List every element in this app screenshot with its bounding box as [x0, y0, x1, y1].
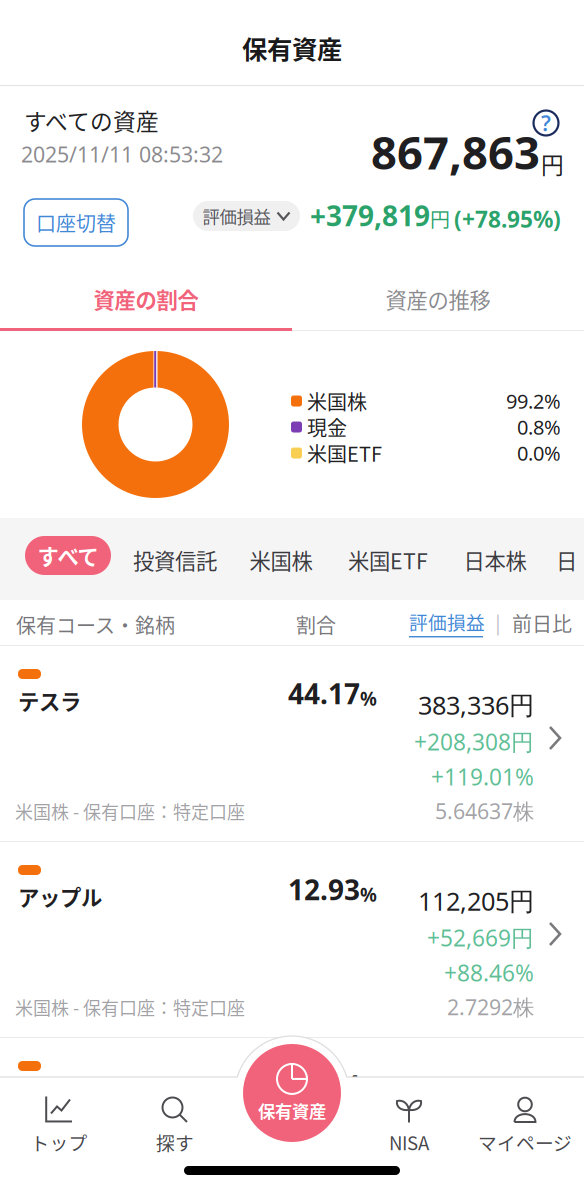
staticText: ?	[541, 109, 551, 137]
staticText: +88.46%	[444, 958, 534, 988]
staticText: 投資信託	[133, 545, 217, 575]
staticText: 5.64637株	[435, 797, 534, 825]
staticText: 米国ETF	[348, 545, 428, 575]
button[interactable]: トップ	[0, 1089, 118, 1163]
button[interactable]: 保有資産	[243, 1044, 341, 1142]
staticText: (+78.95%)	[454, 204, 561, 234]
staticText: 2.7292株	[447, 993, 534, 1021]
staticText: 米国株 - 保有口座：特定口座	[15, 994, 245, 1020]
staticText: 383,336円	[418, 688, 534, 722]
staticText: テスラ	[18, 685, 81, 716]
button[interactable]: すべて	[25, 536, 111, 575]
staticText: 口座切替	[36, 208, 116, 237]
staticText: すべての資産	[24, 104, 159, 137]
staticText: 52,901円	[432, 1080, 534, 1114]
staticText: 日	[556, 545, 577, 575]
staticText: 保有資産	[242, 30, 342, 66]
staticText: 米国ETF	[307, 438, 382, 467]
staticText: パランティア	[18, 1077, 143, 1108]
staticText: 評価損益	[409, 608, 485, 635]
button[interactable]: マイページ	[466, 1089, 584, 1163]
staticText: 米国株 - 保有口座：特定口座	[15, 798, 245, 824]
staticText: NISA	[389, 1128, 429, 1155]
staticText: +52,669円	[427, 923, 534, 953]
staticText: 米国株	[249, 545, 312, 575]
staticText: 6.34	[304, 1067, 360, 1104]
staticText: マイページ	[478, 1128, 572, 1155]
button[interactable]: 米国株	[238, 540, 324, 580]
staticText: 資産の割合	[93, 284, 198, 314]
staticText: 日本株	[463, 545, 526, 575]
staticText: 保有コース・銘柄	[16, 610, 175, 639]
button[interactable]: 投資信託	[124, 540, 226, 580]
button[interactable]: 日本株	[452, 540, 538, 580]
staticText: 前日比	[512, 608, 572, 637]
button[interactable]: 評価損益	[409, 608, 501, 638]
staticText: 資産の推移	[385, 284, 490, 314]
button[interactable]: ヘルプ	[530, 107, 562, 139]
staticText: +119.01%	[431, 762, 534, 792]
staticText: +208,308円	[414, 727, 534, 757]
staticText: 112,205円	[418, 884, 534, 918]
staticText: 円	[541, 147, 564, 180]
staticText: 12.93	[288, 871, 360, 908]
staticText: 米国株	[307, 386, 367, 415]
staticText: 現金	[307, 412, 347, 441]
staticText: 保有資産	[258, 1098, 326, 1123]
button[interactable]: パランティア	[0, 1038, 584, 1200]
button[interactable]: テスラ	[0, 646, 584, 841]
staticText: 867,863	[371, 122, 540, 182]
staticText: 0.0%	[517, 440, 561, 466]
staticText: 2025/11/11 08:53:32	[21, 140, 223, 168]
button[interactable]: 探す	[116, 1089, 234, 1163]
staticText: アップル	[18, 881, 102, 912]
staticText: トップ	[30, 1128, 87, 1155]
button[interactable]: 前日比	[512, 610, 576, 636]
staticText: %	[360, 686, 377, 711]
button[interactable]: 評価損益	[193, 201, 300, 231]
staticText: +379,819	[310, 197, 430, 234]
staticText: 評価損益	[202, 203, 270, 229]
button[interactable]: 資産の割合	[0, 268, 292, 330]
staticText: 44.17	[288, 675, 360, 712]
staticText: %	[360, 882, 377, 907]
staticText: 0.8%	[517, 414, 561, 440]
staticText: +18,220円	[427, 1119, 534, 1149]
staticText: 99.2%	[506, 388, 561, 414]
button[interactable]: NISA	[350, 1089, 468, 1163]
staticText: すべて	[37, 540, 98, 571]
button[interactable]: アップル	[0, 842, 584, 1037]
button[interactable]: 口座切替	[24, 199, 128, 246]
staticText: 探す	[156, 1128, 194, 1155]
staticText: |	[492, 608, 504, 636]
staticText: 円	[430, 204, 450, 233]
button[interactable]: 米国ETF	[336, 540, 440, 580]
button[interactable]: 資産の推移	[292, 268, 584, 330]
staticText: 割合	[296, 610, 336, 639]
